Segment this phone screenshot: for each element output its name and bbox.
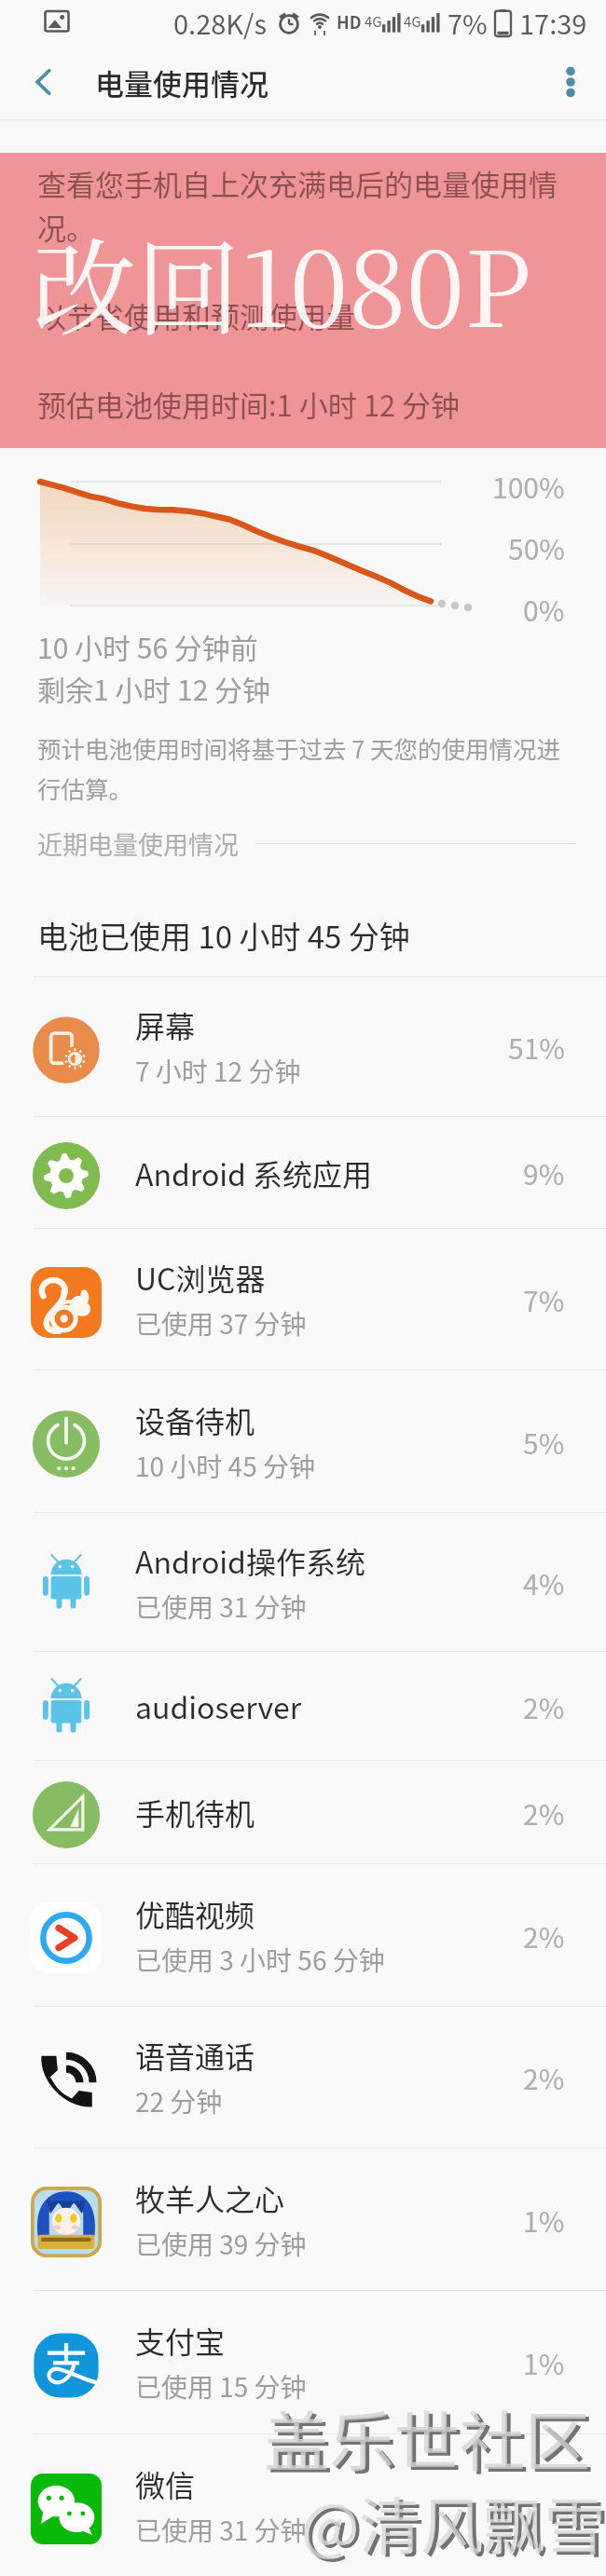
staticText: 2% — [523, 1686, 565, 1726]
staticText: 50% — [508, 527, 565, 567]
staticText: 0% — [523, 589, 565, 629]
button[interactable]: 微信 — [0, 2434, 606, 2576]
staticText: HD — [337, 9, 362, 34]
staticText: 9% — [523, 1152, 565, 1193]
staticText: 1% — [523, 2200, 565, 2240]
button[interactable]: Back — [0, 45, 88, 119]
staticText: 51% — [508, 1027, 565, 1067]
button[interactable]: 语音通话 — [0, 2007, 606, 2147]
staticText: 已使用 31 分钟 — [135, 1588, 307, 1626]
staticText: 改回1080P — [32, 207, 531, 357]
staticText: 近期电量使用情况 — [37, 825, 239, 862]
staticText: 5% — [523, 1422, 565, 1462]
staticText: 2% — [523, 1792, 565, 1833]
button[interactable]: 手机待机 — [0, 1761, 606, 1863]
staticText: Android操作系统 — [135, 1539, 365, 1582]
staticText: 查看您手机自上次充满电后的电量使用情况。 — [37, 162, 559, 248]
staticText: 7% — [448, 3, 488, 42]
staticText: 电量使用情况 — [95, 61, 543, 103]
staticText: UC浏览器 — [135, 1256, 266, 1299]
staticText: 牧羊人之心 — [135, 2176, 285, 2219]
button[interactable]: UC浏览器 — [0, 1229, 606, 1370]
staticText: 4G — [365, 11, 382, 32]
staticText: 100% — [492, 466, 565, 506]
button[interactable]: Android 系统应用 — [0, 1117, 606, 1228]
staticText: 7% — [523, 1279, 565, 1319]
button[interactable]: 屏幕 — [0, 977, 606, 1116]
staticText: 以节省使用和预测使用量 — [37, 294, 355, 336]
staticText: 屏幕 — [135, 1003, 196, 1046]
staticText: 已使用 15 分钟 — [135, 2367, 307, 2406]
staticText: 已使用 3 小时 56 分钟 — [135, 1941, 385, 1979]
staticText: 4G — [404, 11, 421, 32]
button[interactable]: audioserver — [0, 1652, 606, 1760]
staticText: 1% — [523, 2342, 565, 2382]
staticText: 预计电池使用时间将基于过去 7 天您的使用情况进行估算。 — [37, 730, 576, 806]
button[interactable]: 支付宝 — [0, 2291, 606, 2433]
staticText: 设备待机 — [135, 1398, 255, 1441]
staticText: 4% — [523, 1562, 565, 1602]
button[interactable]: 优酷视频 — [0, 1864, 606, 2006]
staticText: 电池已使用 10 小时 45 分钟 — [37, 913, 410, 958]
staticText: Android 系统应用 — [135, 1152, 373, 1194]
staticText: audioserver — [135, 1684, 302, 1727]
staticText: 盖乐世社区 — [268, 2393, 594, 2487]
staticText: @清风飘雪 — [301, 2477, 606, 2567]
staticText: 优酷视频 — [135, 1892, 255, 1935]
button[interactable]: 牧羊人之心 — [0, 2148, 606, 2290]
staticText: 10 小时 56 分钟前 — [37, 626, 258, 666]
staticText: 剩余1 小时 12 分钟 — [37, 668, 271, 708]
staticText: 17:39 — [519, 3, 587, 42]
staticText: 2% — [523, 1915, 565, 1956]
staticText: 0.28K/s — [173, 3, 268, 42]
staticText: 盖乐世社区 — [264, 2391, 590, 2485]
staticText: 微信 — [135, 2462, 196, 2505]
staticText: 手机待机 — [135, 1791, 255, 1833]
button[interactable]: 设备待机 — [0, 1370, 606, 1512]
staticText: 已使用 31 分钟 — [135, 2511, 307, 2549]
staticText: @清风飘雪 — [305, 2480, 606, 2569]
staticText: 语音通话 — [135, 2034, 255, 2077]
staticText: 7 小时 12 分钟 — [135, 1052, 301, 1090]
button[interactable]: More options — [535, 45, 606, 119]
staticText: 已使用 39 分钟 — [135, 2225, 307, 2263]
staticText: 支付宝 — [135, 2319, 226, 2362]
staticText: 10 小时 45 分钟 — [135, 1447, 315, 1485]
staticText: 已使用 37 分钟 — [135, 1304, 307, 1343]
staticText: 预估电池使用时间:1 小时 12 分钟 — [37, 383, 461, 425]
button[interactable]: Android操作系统 — [0, 1513, 606, 1651]
staticText: 2% — [523, 2057, 565, 2097]
staticText: 22 分钟 — [135, 2082, 223, 2120]
